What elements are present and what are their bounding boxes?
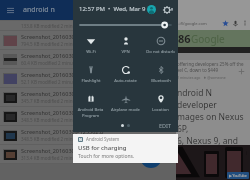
staticText: minutes ago — [177, 162, 198, 167]
staticText: Do not disturb — [146, 49, 175, 55]
staticText: 345.7 KB modified 2 minutes ago — [21, 98, 91, 104]
button[interactable]: Flashlight — [73, 61, 108, 90]
button[interactable]: Screenshot_20160309-124052.p — [0, 31, 176, 49]
staticText: 6, Nexus 9, and Pixel C — [177, 135, 249, 159]
button[interactable]: Airplane mode — [108, 90, 143, 119]
button[interactable]: EDIT — [159, 122, 172, 129]
staticText: Airplane mode — [111, 107, 140, 113]
button[interactable]: Settings — [161, 4, 172, 15]
button[interactable]: Screenshot_20160309-124541.p — [0, 107, 176, 125]
button[interactable]: Screenshot_20160309-124506.p — [0, 88, 176, 106]
staticText: 86 — [178, 31, 191, 46]
button[interactable]: Location — [143, 90, 178, 119]
staticText: VPN — [121, 49, 130, 55]
staticText: mages on Nexus 6P, — [177, 111, 249, 135]
staticText: Screenshot_20160309-125302.p — [21, 128, 104, 135]
staticText: 313.4 KB modified 2 minutes ago — [21, 155, 91, 161]
staticText: 348.5 KB modified 2 minutes ago — [21, 136, 91, 142]
button[interactable]: 133.8 KB modified 2 minutes ago — [0, 21, 176, 30]
button[interactable]: Brightness — [73, 18, 178, 32]
button[interactable]: N — [73, 134, 178, 163]
staticText: EDIT — [159, 122, 172, 129]
staticText: xel C, down to $449 — [177, 67, 219, 73]
button[interactable]: VPN — [108, 32, 143, 61]
staticText: Auto-rotate — [114, 78, 137, 84]
staticText: Android System — [86, 136, 120, 142]
staticText: 133.8 KB modified 2 minutes ago — [21, 23, 91, 29]
staticText: Screenshot_20160309-124437.p — [21, 52, 104, 59]
button[interactable]: Switch user — [146, 4, 157, 15]
staticText: android n — [23, 5, 55, 15]
staticText: Android Beta Program 4 com'chbm' — [73, 107, 108, 118]
staticText: Wi-Fi — [86, 49, 96, 55]
staticText: USB for charging — [78, 144, 127, 152]
staticText: Google — [191, 32, 225, 46]
staticText: ▶ YouTube — [229, 173, 247, 178]
staticText: 60.4 KB modified 2 minutes ago — [21, 60, 89, 66]
button[interactable]: Android Beta Program 4 com'chbm' — [73, 90, 108, 119]
button[interactable]: Add — [140, 146, 162, 168]
staticText: offering developers 25% off the — [177, 61, 244, 67]
staticText: Screenshot_20160309-125601.png — [21, 147, 111, 154]
staticText: 12:57 PM • Wed, Mar 9 — [79, 5, 146, 13]
staticText: Touch for more options. — [78, 153, 135, 160]
staticText: Bluetooth — [151, 78, 171, 84]
button[interactable]: Open navigation drawer — [5, 5, 15, 15]
staticText: 348.5 KB modified 2 minutes ago — [21, 117, 91, 123]
button[interactable]: Screenshot_20160309-125601.png — [0, 145, 176, 163]
staticText: Screenshot_20160309-124506.p — [21, 90, 104, 97]
staticText: p.ifl/google.com — [176, 21, 207, 26]
staticText: Screenshot_20160309-124541.p — [21, 109, 104, 116]
button[interactable]: Screenshot_20160309-125302.p — [0, 126, 176, 144]
staticText: 794.5 KB modified 2 minutes ago — [21, 41, 91, 47]
staticText: Screenshot_20160309-124052.p — [21, 33, 104, 40]
button[interactable]: Screenshot_20160309-124648.p — [0, 69, 176, 87]
staticText: N — [79, 137, 82, 142]
staticText: ndroid N developer — [177, 87, 249, 111]
staticText: Flashlight — [81, 78, 101, 84]
button[interactable]: Auto-rotate — [108, 61, 143, 90]
button[interactable]: Wi-Fi — [73, 32, 108, 61]
button[interactable]: Do not disturb — [143, 32, 178, 61]
staticText: 52.1 KB modified 2 minutes ago — [21, 79, 89, 85]
staticText: 2 minutes ago ♦ @someone — [177, 75, 226, 80]
staticText: Screenshot_20160309-124648.p — [21, 71, 104, 78]
button[interactable]: Screenshot_20160309-124437.p — [0, 50, 176, 68]
button[interactable]: Bluetooth — [143, 61, 178, 90]
staticText: Location — [152, 107, 169, 113]
